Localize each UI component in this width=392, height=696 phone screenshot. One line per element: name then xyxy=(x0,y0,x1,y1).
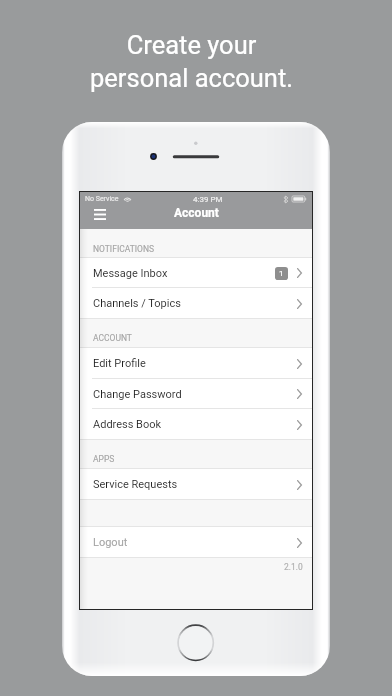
staticText: 4:39 PM xyxy=(193,195,223,204)
button[interactable]: Channels / Topics xyxy=(80,288,312,319)
staticText: NOTIFICATIONS xyxy=(93,244,155,254)
staticText: Address Book xyxy=(93,418,162,431)
staticText: 2.1.0 xyxy=(284,562,303,572)
staticText: Edit Profile xyxy=(93,357,146,370)
staticText: ACCOUNT xyxy=(93,333,132,343)
staticText: Message Inbox xyxy=(93,267,168,280)
staticText: Account xyxy=(174,206,219,220)
button[interactable]: Edit Profile xyxy=(80,348,312,379)
button[interactable]: Message Inbox xyxy=(80,258,312,288)
button[interactable]: Service Requests xyxy=(80,469,312,500)
staticText: No Service xyxy=(85,195,119,203)
button[interactable]: Open navigation menu xyxy=(88,205,112,223)
button[interactable]: Logout xyxy=(80,527,312,558)
button[interactable]: Address Book xyxy=(80,409,312,440)
staticText: Change Password xyxy=(93,388,182,401)
staticText: 1 xyxy=(279,269,284,278)
staticText: Service Requests xyxy=(93,478,178,491)
staticText: Channels / Topics xyxy=(93,297,181,310)
staticText: APPS xyxy=(93,454,115,464)
staticText: Logout xyxy=(93,536,128,549)
button[interactable]: Change Password xyxy=(80,379,312,409)
staticText: Create your personal account. xyxy=(90,30,293,93)
